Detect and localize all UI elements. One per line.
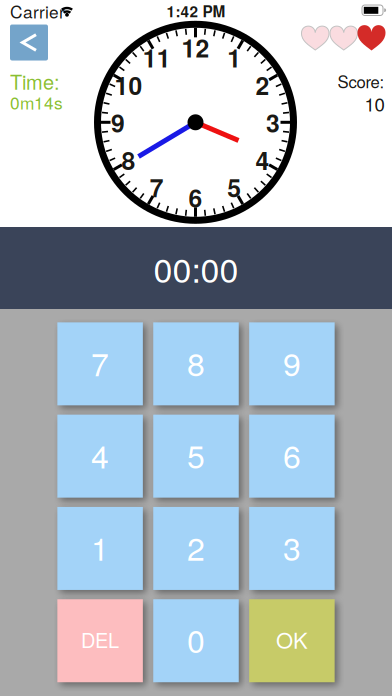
button[interactable]: 1 [57,507,143,590]
staticText: 0 [187,616,205,662]
staticText: 9 [111,105,125,140]
staticText: 3 [266,105,280,140]
staticText: 5 [187,432,205,477]
button[interactable]: 8 [153,322,239,405]
button[interactable]: 6 [249,415,335,498]
staticText: 1 [227,40,241,75]
staticText: 10 [114,67,142,102]
staticText: Time: [10,67,60,95]
staticText: 7 [150,170,164,205]
button[interactable]: 4 [57,415,143,498]
staticText: OK [276,623,308,655]
staticText: 0m14s [10,90,63,114]
staticText: 8 [121,142,135,177]
staticText: Score: [337,69,384,93]
button[interactable]: DEL [57,599,143,682]
button[interactable]: OK [249,599,335,682]
staticText: Carrier [10,0,65,23]
staticText: 10 [364,90,384,117]
staticText: 1 [91,524,109,570]
staticText: 6 [188,180,202,215]
staticText: 2 [187,524,205,570]
staticText: 12 [181,30,209,65]
staticText: 2 [256,67,270,102]
staticText: DEL [81,625,119,653]
staticText: 11 [143,40,171,75]
staticText: 3 [283,524,301,570]
staticText: 8 [187,339,205,385]
button[interactable]: Back [10,24,48,60]
staticText: 00:00 [153,244,238,292]
button[interactable]: 0 [153,599,239,682]
button[interactable]: 5 [153,415,239,498]
staticText: 7 [91,339,109,385]
button[interactable]: 3 [249,507,335,590]
staticText: 5 [227,170,241,205]
staticText: 9 [283,339,301,385]
staticText: 4 [91,432,109,477]
staticText: 6 [283,432,301,477]
button[interactable]: 7 [57,322,143,405]
staticText: 4 [256,142,270,177]
staticText: 1:42 PM [166,0,225,22]
button[interactable]: 9 [249,322,335,405]
button[interactable]: 2 [153,507,239,590]
